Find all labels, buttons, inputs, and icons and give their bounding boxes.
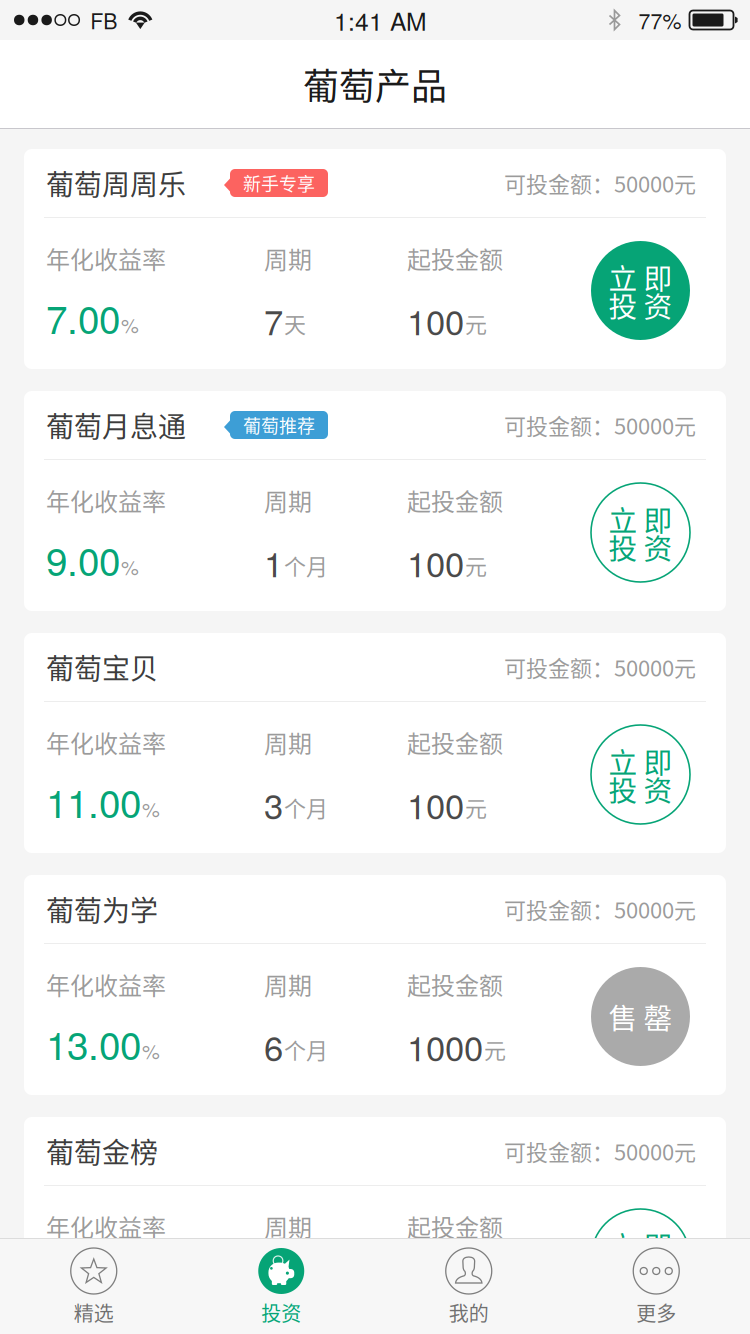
staticText: 7.00	[46, 290, 120, 345]
staticText: 葡萄金榜	[46, 1131, 158, 1171]
button[interactable]: 立 即	[591, 241, 690, 340]
staticText: 可投金额：50000元	[504, 167, 696, 199]
staticText: 立 即	[608, 498, 672, 540]
staticText: 葡萄月息通	[46, 405, 186, 445]
staticText: 立 即	[608, 1224, 672, 1266]
staticText: 年化收益率	[46, 967, 166, 1002]
staticText: 葡萄为学	[46, 889, 158, 929]
staticText: 13.00	[46, 1016, 141, 1071]
staticText: 新手专享	[243, 170, 315, 196]
staticText: 6	[264, 1021, 283, 1071]
staticText: 我的	[449, 1298, 489, 1327]
staticText: 7	[264, 295, 283, 345]
staticText: 可投金额：50000元	[504, 1135, 696, 1167]
staticText: 精选	[74, 1298, 114, 1327]
staticText: 更多	[636, 1298, 676, 1327]
staticText: 个月	[303, 1275, 347, 1307]
button[interactable]: 更多	[562, 1239, 750, 1334]
staticText: 12	[264, 1263, 302, 1313]
staticText: 100	[407, 779, 464, 829]
staticText: 9.00	[46, 532, 120, 587]
staticText: 起投金额	[407, 725, 503, 760]
staticText: 葡萄产品	[303, 58, 447, 110]
staticText: 1:41 AM	[334, 2, 427, 38]
staticText: 起投金额	[407, 967, 503, 1002]
staticText: 葡萄推荐	[243, 412, 315, 438]
button[interactable]: 精选	[0, 1239, 187, 1334]
button[interactable]: 售 罄	[591, 967, 690, 1066]
staticText: 周期	[264, 1209, 312, 1244]
staticText: 投 资	[608, 768, 672, 810]
staticText: 11.00	[46, 774, 141, 829]
staticText: 元	[465, 307, 487, 339]
staticText: 葡萄宝贝	[46, 647, 158, 687]
staticText: 周期	[264, 241, 312, 276]
button[interactable]: 立 即	[591, 725, 690, 824]
staticText: 可投金额：50000元	[504, 409, 696, 441]
staticText: 周期	[264, 483, 312, 518]
staticText: 元	[484, 1033, 506, 1065]
staticText: 起投金额	[407, 1209, 503, 1244]
staticText: 投资	[261, 1298, 301, 1327]
staticText: 周期	[264, 725, 312, 760]
staticText: 年化收益率	[46, 1209, 166, 1244]
staticText: %	[142, 1036, 160, 1065]
staticText: 起投金额	[407, 483, 503, 518]
staticText: 年化收益率	[46, 241, 166, 276]
staticText: 年化收益率	[46, 725, 166, 760]
staticText: 个月	[284, 1033, 328, 1065]
staticText: 1000	[407, 1021, 483, 1071]
staticText: 元	[465, 549, 487, 581]
staticText: 个月	[284, 791, 328, 823]
button[interactable]: 投资	[187, 1239, 375, 1334]
staticText: 100	[407, 295, 464, 345]
staticText: 1000	[407, 1263, 483, 1313]
staticText: 元	[484, 1275, 506, 1307]
staticText: 100	[407, 537, 464, 587]
staticText: 售 罄	[608, 996, 672, 1037]
button[interactable]: 立 即	[591, 483, 690, 582]
staticText: FB	[90, 5, 117, 35]
button[interactable]: 立 即	[591, 1209, 690, 1308]
staticText: 立 即	[608, 256, 672, 298]
staticText: 天	[284, 307, 306, 339]
staticText: 起投金额	[407, 241, 503, 276]
staticText: 3	[264, 779, 283, 829]
staticText: %	[121, 552, 139, 581]
staticText: %	[121, 310, 139, 339]
staticText: 周期	[264, 967, 312, 1002]
staticText: 元	[465, 791, 487, 823]
staticText: 1	[264, 537, 283, 587]
staticText: 投 资	[608, 1252, 672, 1294]
staticText: 投 资	[608, 284, 672, 326]
staticText: 年化收益率	[46, 483, 166, 518]
staticText: 15.00	[46, 1258, 141, 1313]
button[interactable]: 葡萄产品	[0, 40, 750, 128]
staticText: %	[142, 794, 160, 823]
staticText: 77%	[638, 5, 681, 35]
staticText: 立 即	[608, 740, 672, 782]
button[interactable]: 我的	[375, 1239, 562, 1334]
staticText: 可投金额：50000元	[504, 893, 696, 925]
staticText: 可投金额：50000元	[504, 651, 696, 683]
staticText: 葡萄周周乐	[46, 163, 186, 203]
staticText: 个月	[284, 549, 328, 581]
staticText: 投 资	[608, 526, 672, 568]
